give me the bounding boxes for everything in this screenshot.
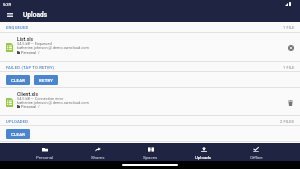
staticText: CLEAR	[11, 78, 26, 83]
button[interactable]: Personal	[18, 143, 71, 161]
staticText: ENQUEUED	[6, 25, 29, 30]
staticText: 54.5 kB — Connection error	[17, 96, 64, 101]
button[interactable]: Spaces	[124, 143, 177, 161]
staticText: Personal	[36, 155, 54, 160]
button[interactable]: Shares	[71, 143, 124, 161]
staticText: 5:39	[3, 2, 12, 7]
staticText: 2 FILES	[280, 119, 295, 124]
button[interactable]: CLEAR	[6, 129, 30, 139]
staticText: Shares	[91, 155, 105, 160]
button[interactable]: Open navigation menu	[4, 9, 16, 21]
staticText: Offline	[250, 155, 263, 160]
staticText: UPLOADED	[6, 119, 29, 124]
button[interactable]: Client.xls	[0, 88, 300, 116]
staticText: List.xls	[17, 36, 34, 42]
staticText: 1 FILE	[283, 65, 295, 70]
staticText: Personal /	[21, 104, 40, 109]
staticText: Spaces	[143, 155, 158, 160]
button[interactable]: List.xls	[0, 33, 300, 62]
button[interactable]: Cancel upload	[285, 42, 296, 53]
staticText: katherine.johnson @ demo.owncloud.com	[17, 45, 89, 50]
staticText: FAILED (TAP TO RETRY)	[6, 65, 55, 70]
staticText: Uploads	[23, 11, 48, 19]
staticText: 54.5 kB — Enqueued	[17, 41, 52, 46]
button[interactable]: Offline	[230, 143, 282, 161]
staticText: CLEAR	[11, 132, 26, 137]
staticText: RETRY	[39, 78, 54, 83]
staticText: Uploads	[195, 155, 212, 160]
button[interactable]: Remove upload	[285, 97, 296, 108]
button[interactable]: RETRY	[34, 75, 58, 85]
staticText: Personal /	[21, 50, 40, 55]
button[interactable]: CLEAR	[6, 75, 30, 85]
staticText: 1 FILE	[283, 25, 295, 30]
button[interactable]: Uploads	[177, 143, 230, 161]
staticText: katherine.johnson @ demo.owncloud.com	[17, 100, 89, 105]
staticText: Client.xls	[17, 91, 38, 97]
